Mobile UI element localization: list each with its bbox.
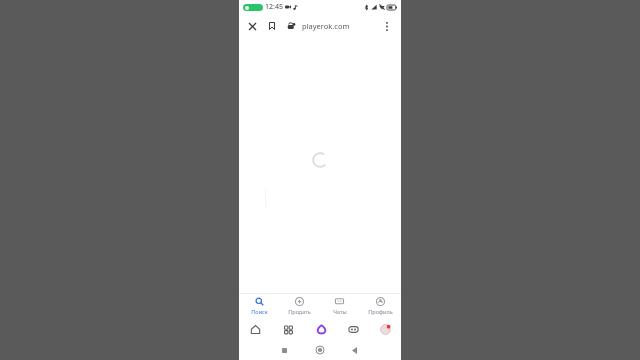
staticText: 12:45 (265, 2, 283, 12)
button[interactable]: Site security info (284, 19, 298, 33)
button[interactable]: Home (239, 318, 272, 340)
button[interactable]: Bookmark (265, 19, 279, 33)
button[interactable]: Продать (279, 294, 319, 318)
button[interactable]: Чаты (319, 294, 360, 318)
button[interactable]: Home (302, 340, 337, 360)
staticText: Поиск (251, 308, 268, 315)
button[interactable]: Recent apps (267, 340, 302, 360)
staticText: Продать (288, 308, 311, 315)
staticText: Профиль (368, 308, 393, 315)
staticText: Чаты (333, 308, 347, 315)
button[interactable]: Assistant (305, 318, 337, 340)
button[interactable]: Поиск (239, 294, 279, 318)
button[interactable]: Messenger (337, 318, 369, 340)
button[interactable]: Back (337, 340, 372, 360)
button[interactable]: Profile (369, 318, 401, 340)
staticText: playerok.com (302, 21, 350, 31)
button[interactable]: Профиль (360, 294, 401, 318)
button[interactable]: Close (245, 19, 259, 33)
button[interactable]: Apps (272, 318, 305, 340)
button[interactable]: More options (379, 18, 395, 34)
